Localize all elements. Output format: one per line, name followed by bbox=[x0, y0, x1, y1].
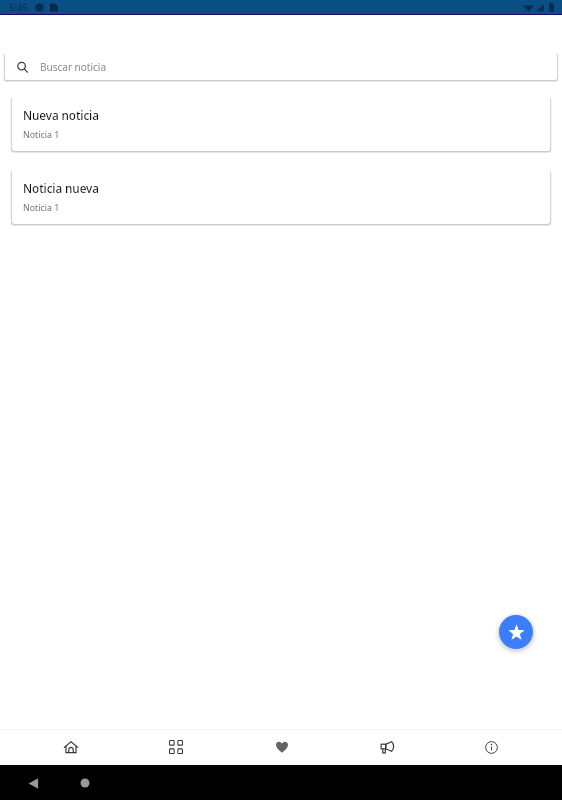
button[interactable]: Buscar noticia bbox=[5, 53, 557, 80]
button[interactable]: Favoritos bbox=[229, 729, 334, 765]
staticText: Noticia 1 bbox=[23, 129, 60, 141]
button[interactable]: Home bbox=[74, 772, 96, 794]
button[interactable]: Back bbox=[22, 772, 44, 794]
button[interactable]: Inicio bbox=[18, 729, 123, 765]
staticText: Buscar noticia bbox=[40, 60, 107, 74]
staticText: 5:45 bbox=[9, 1, 28, 14]
button[interactable]: Favorito bbox=[499, 615, 533, 649]
button[interactable]: Noticia nueva bbox=[12, 170, 550, 224]
button[interactable]: Categorias bbox=[123, 729, 228, 765]
staticText: Noticia 1 bbox=[23, 202, 60, 214]
button[interactable]: Informacion bbox=[439, 729, 544, 765]
button[interactable]: Nueva noticia bbox=[12, 97, 550, 151]
staticText: Noticia nueva bbox=[23, 180, 99, 196]
staticText: Nueva noticia bbox=[23, 107, 99, 123]
button[interactable]: Anuncios bbox=[334, 729, 439, 765]
